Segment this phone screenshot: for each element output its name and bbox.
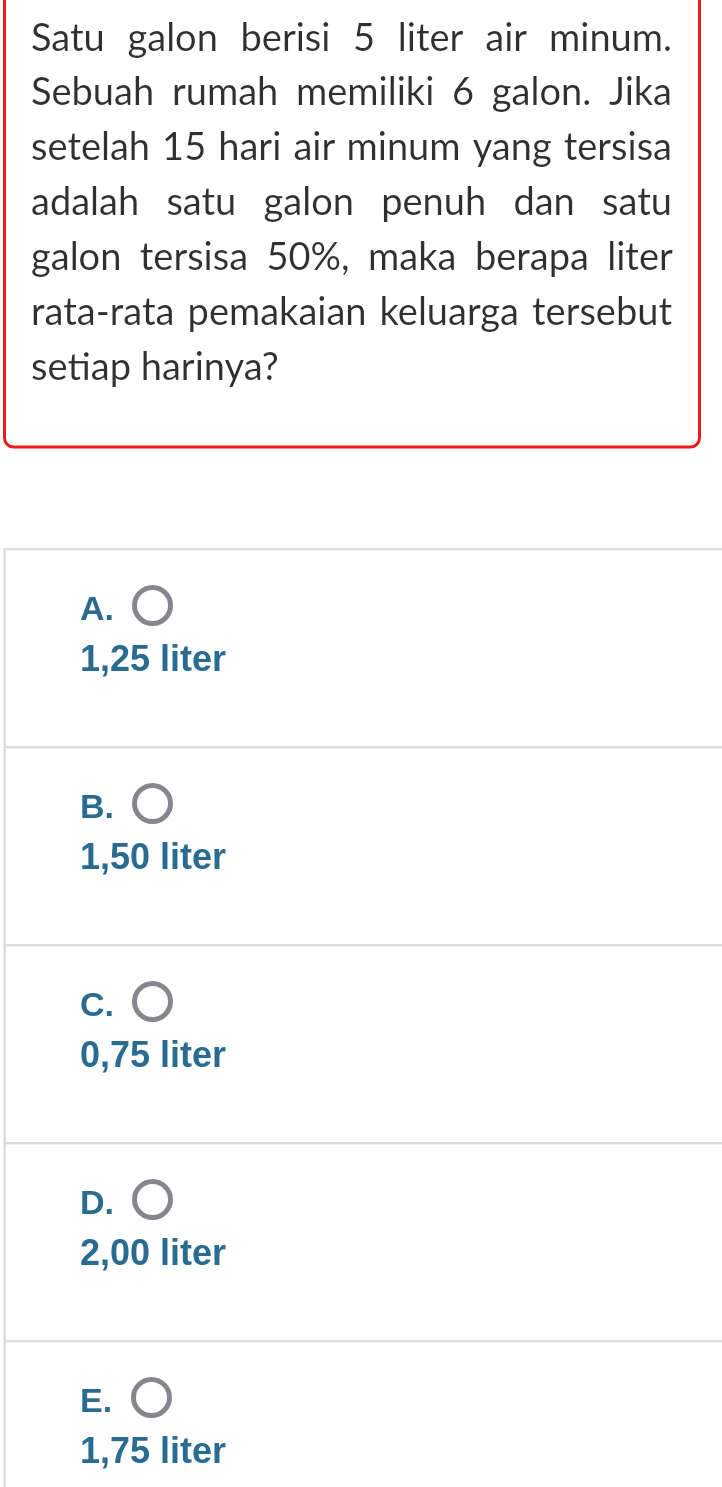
staticText: C. (80, 985, 114, 1023)
staticText: 0,75 liter (80, 1034, 227, 1074)
button[interactable]: E. (0, 1340, 722, 1487)
button[interactable]: A. (0, 548, 722, 746)
other: Select option D. (132, 1179, 173, 1220)
staticText: A. (80, 589, 114, 627)
staticText: E. (80, 1381, 113, 1419)
button[interactable]: D. (0, 1142, 722, 1340)
staticText: 1,75 liter (80, 1430, 227, 1470)
staticText: Satu galon berisi 5 liter air minum. Seb… (31, 13, 672, 388)
staticText: 1,50 liter (80, 836, 227, 876)
button[interactable]: C. (0, 944, 722, 1142)
button[interactable]: B. (0, 746, 722, 944)
other: Select option A. (132, 585, 173, 626)
staticText: D. (80, 1183, 114, 1221)
staticText: 2,00 liter (80, 1232, 227, 1272)
other: Select option E. (131, 1377, 172, 1418)
other: Select option B. (132, 783, 173, 824)
staticText: 1,25 liter (80, 638, 227, 678)
other: Select option C. (132, 981, 173, 1022)
staticText: B. (80, 787, 114, 825)
